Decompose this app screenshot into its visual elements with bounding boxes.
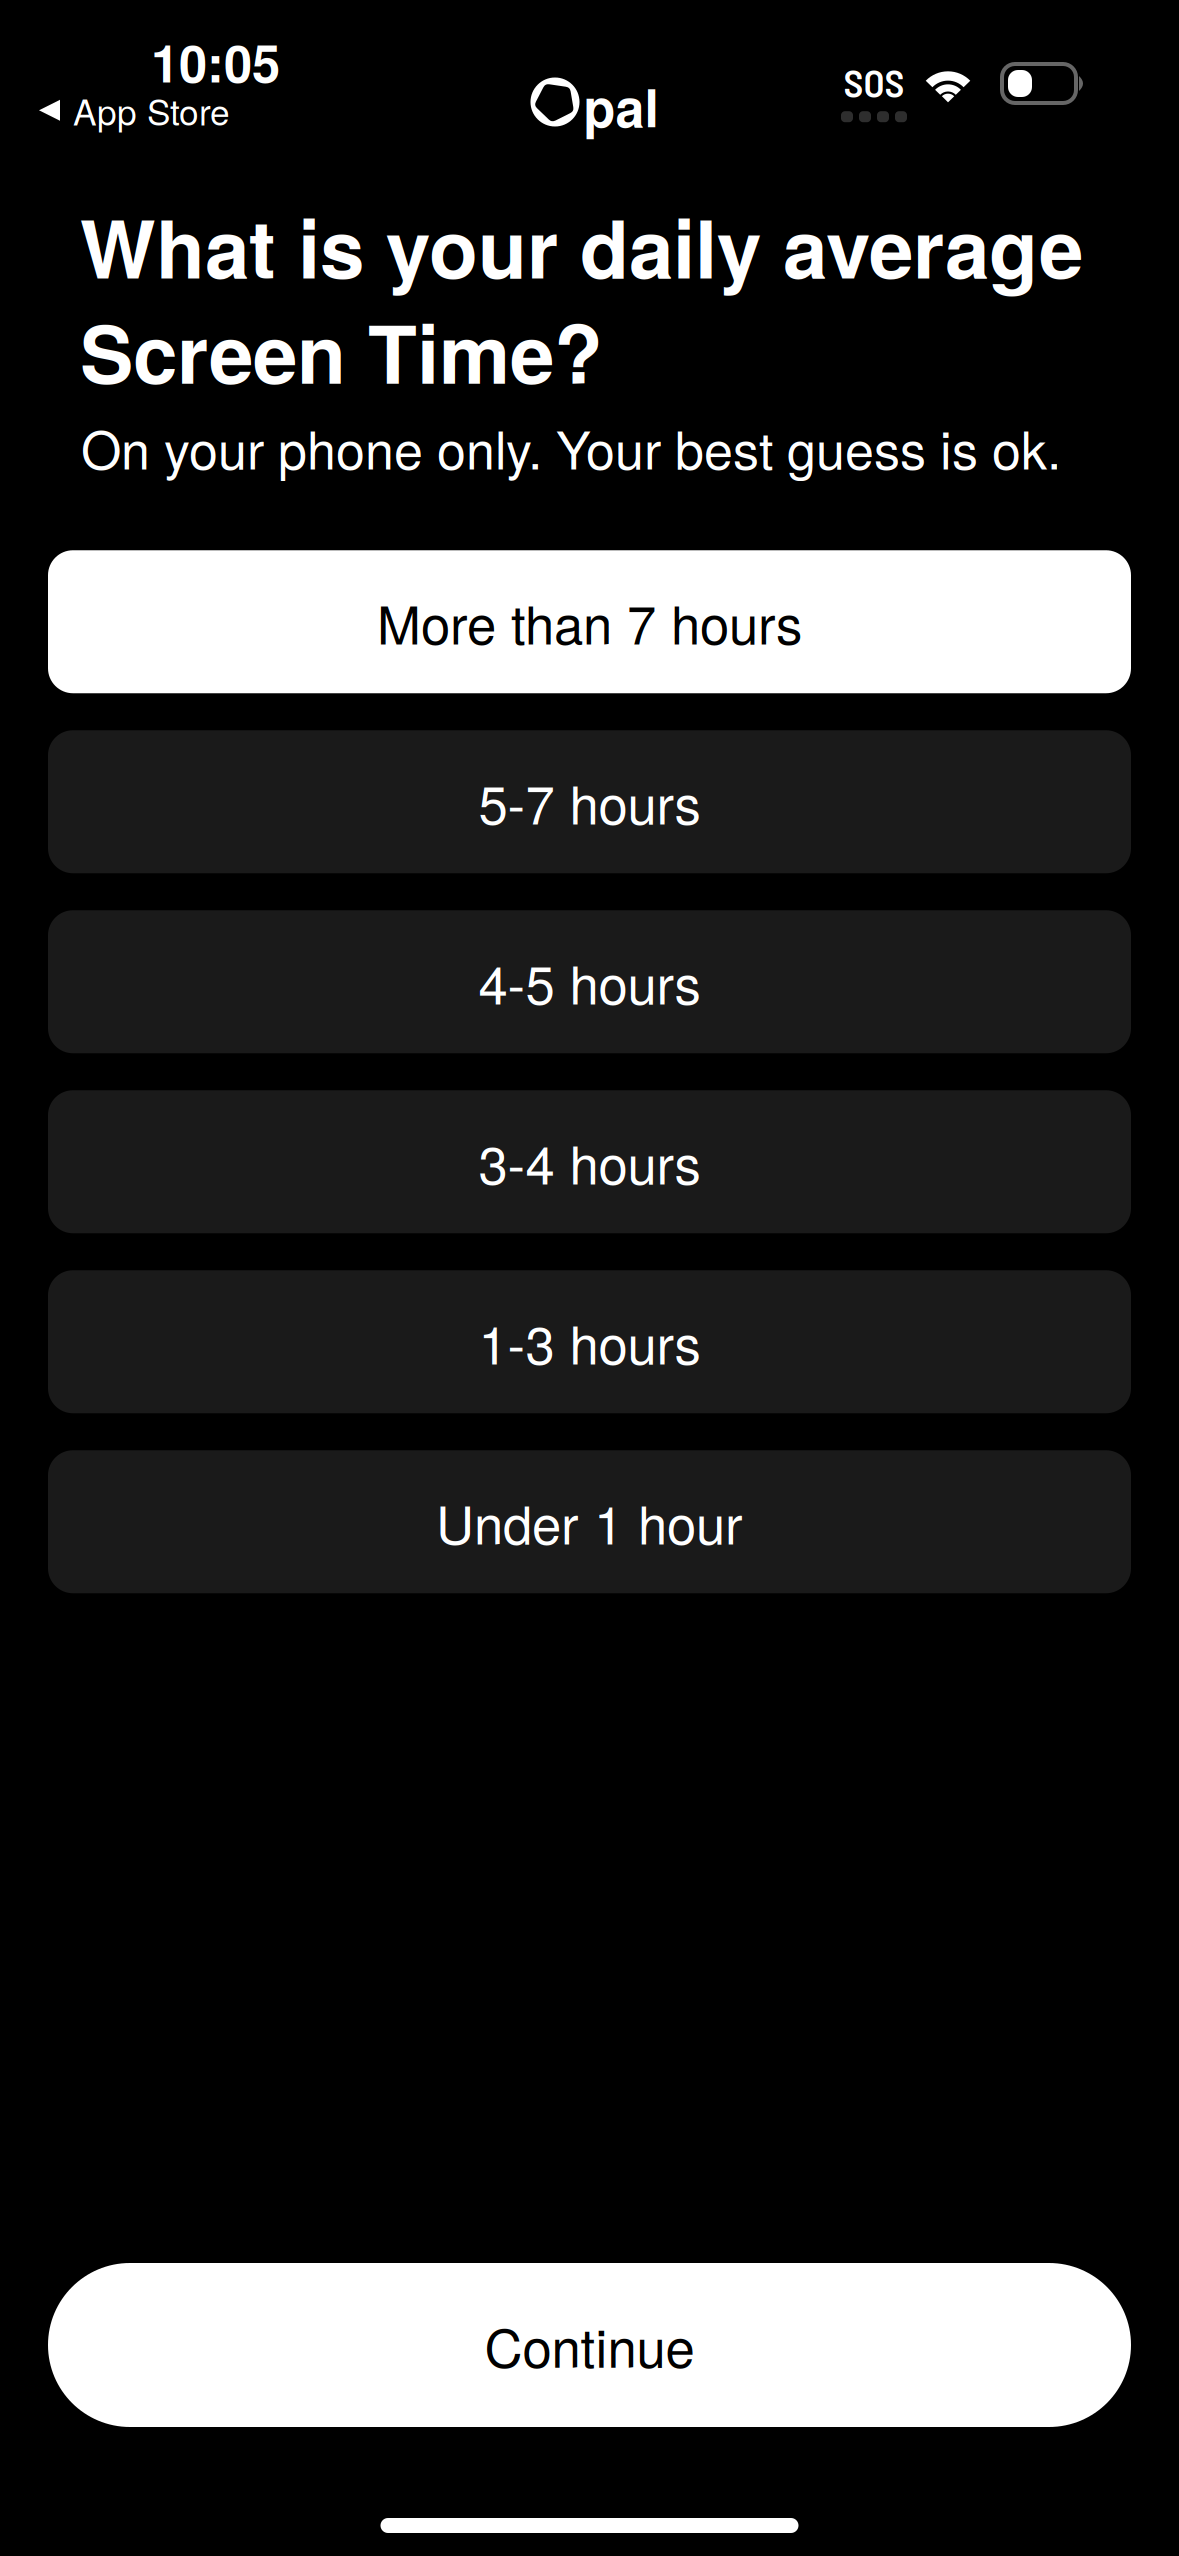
button[interactable]: 3-4 hours [48, 1090, 1131, 1233]
staticText: pal [583, 69, 658, 143]
staticText: App Store [73, 85, 230, 136]
staticText: On your phone only. Your best guess is o… [81, 410, 1061, 484]
button[interactable]: 5-7 hours [48, 730, 1131, 873]
staticText: 1-3 hours [478, 1304, 700, 1379]
staticText: 3-4 hours [478, 1124, 700, 1199]
staticText: 4-5 hours [478, 944, 700, 1019]
button[interactable]: 1-3 hours [48, 1270, 1131, 1413]
button[interactable]: More than 7 hours [48, 550, 1131, 693]
staticText: 5-7 hours [478, 764, 700, 839]
staticText: Continue [484, 2307, 694, 2383]
button[interactable]: Back to App Store [39, 85, 230, 136]
staticText: What is your daily average Screen Time? [80, 193, 1083, 404]
staticText: 10:05 [151, 25, 280, 98]
staticText: Under 1 hour [436, 1484, 743, 1559]
button[interactable]: Under 1 hour [48, 1450, 1131, 1593]
button[interactable]: 4-5 hours [48, 910, 1131, 1053]
staticText: More than 7 hours [377, 584, 802, 659]
staticText: SOS [843, 59, 904, 105]
button[interactable]: Continue [48, 2263, 1131, 2427]
